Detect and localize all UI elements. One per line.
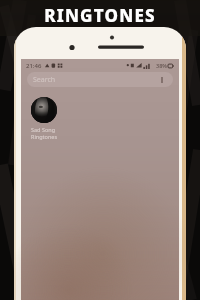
button[interactable]: Sad Song xyxy=(31,97,71,140)
staticText: Ringtones xyxy=(31,133,58,140)
staticText: Search xyxy=(33,75,56,85)
staticText: Sad Song xyxy=(31,126,56,133)
staticText: 38% xyxy=(156,62,167,69)
staticText: RINGTONES xyxy=(44,4,156,27)
button[interactable]: Search xyxy=(27,72,173,87)
staticText: 21:46 xyxy=(26,62,42,70)
button[interactable]: More options xyxy=(157,75,167,85)
